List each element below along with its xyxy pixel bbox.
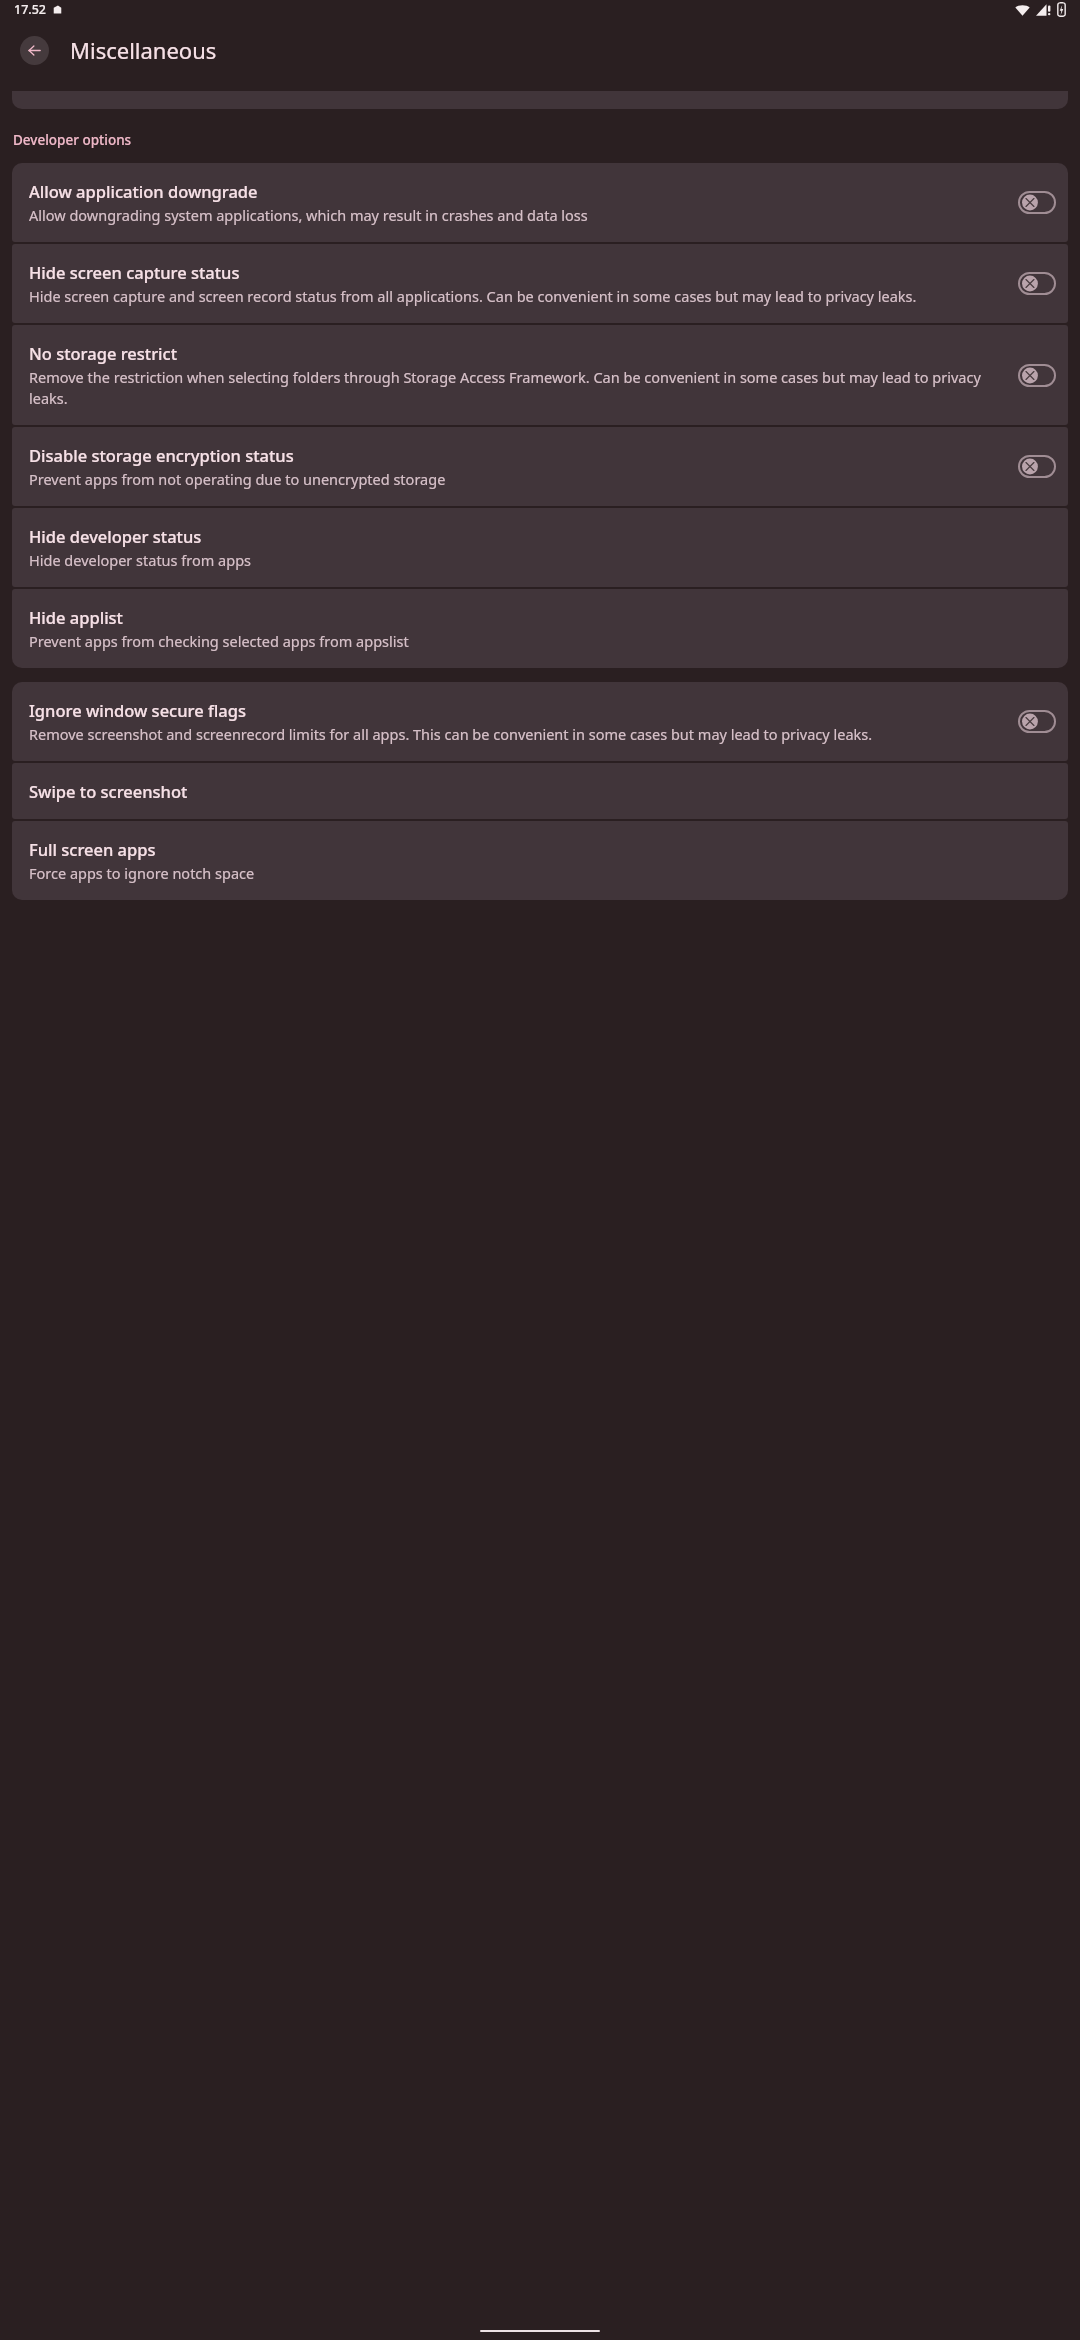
button[interactable]: Disable storage encryption status: [12, 427, 1068, 506]
button[interactable]: Full screen apps: [12, 821, 1068, 900]
staticText: Prevent apps from checking selected apps…: [29, 631, 409, 651]
staticText: Remove screenshot and screenrecord limit…: [29, 724, 873, 744]
staticText: Allow downgrading system applications, w…: [29, 205, 588, 225]
staticText: Hide screen capture status: [29, 261, 240, 283]
button[interactable]: Toggle off: [1018, 272, 1056, 295]
button[interactable]: Hide applist: [12, 589, 1068, 668]
button[interactable]: Toggle off: [1018, 455, 1056, 478]
staticText: Full screen apps: [29, 838, 156, 860]
staticText: Hide screen capture and screen record st…: [29, 286, 917, 306]
staticText: Hide developer status from apps: [29, 550, 251, 570]
button[interactable]: Swipe to screenshot: [12, 763, 1068, 819]
button[interactable]: Allow application downgrade: [12, 163, 1068, 242]
button[interactable]: Hide developer status: [12, 508, 1068, 587]
staticText: Ignore window secure flags: [29, 699, 247, 721]
staticText: Force apps to ignore notch space: [29, 863, 255, 883]
button[interactable]: Ignore window secure flags: [12, 682, 1068, 761]
button[interactable]: No storage restrict: [12, 325, 1068, 425]
staticText: Disable storage encryption status: [29, 444, 294, 466]
button[interactable]: Back: [20, 36, 49, 65]
staticText: Developer options: [13, 131, 132, 149]
staticText: No storage restrict: [29, 342, 177, 364]
button[interactable]: Toggle off: [1018, 710, 1056, 733]
button[interactable]: Hide screen capture status: [12, 244, 1068, 323]
staticText: Swipe to screenshot: [29, 780, 188, 802]
staticText: Prevent apps from not operating due to u…: [29, 469, 446, 489]
staticText: Miscellaneous: [70, 35, 217, 65]
button[interactable]: Toggle off: [1018, 364, 1056, 387]
staticText: Hide developer status: [29, 525, 202, 547]
staticText: Allow application downgrade: [29, 180, 258, 202]
staticText: Remove the restriction when selecting fo…: [29, 367, 1008, 408]
staticText: Hide applist: [29, 606, 123, 628]
staticText: 17.52: [14, 1, 47, 18]
button[interactable]: Toggle off: [1018, 191, 1056, 214]
